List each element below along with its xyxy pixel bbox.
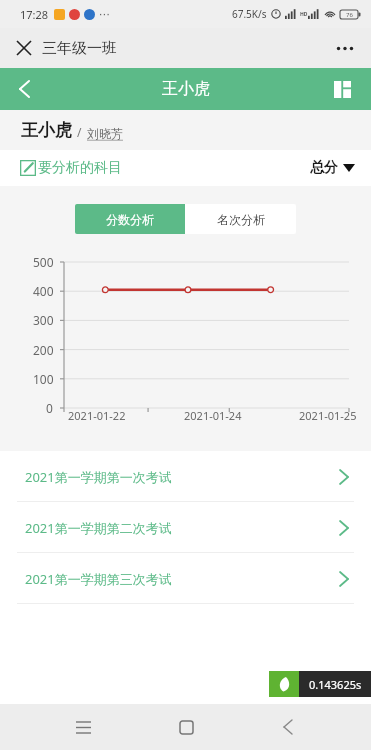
staticText: / bbox=[77, 124, 82, 140]
button[interactable]: Recent apps bbox=[63, 707, 103, 747]
button[interactable]: 2021第一学期第一次考试 bbox=[0, 451, 371, 502]
button[interactable]: 刘晓芳 bbox=[87, 126, 123, 141]
staticText: 200 bbox=[33, 342, 54, 358]
button[interactable]: 2021第一学期第三次考试 bbox=[0, 553, 371, 604]
staticText: 17:28 bbox=[20, 7, 49, 22]
staticText: 总分 bbox=[310, 159, 338, 177]
button[interactable]: Dashboard bbox=[325, 72, 359, 106]
staticText: 2021第一学期第二次考试 bbox=[25, 519, 172, 537]
staticText: 0.143625s bbox=[309, 677, 362, 692]
staticText: 500 bbox=[33, 254, 54, 270]
button[interactable]: 名次分析 bbox=[185, 204, 296, 234]
button[interactable]: Back bbox=[268, 707, 308, 747]
staticText: 王小虎 bbox=[21, 120, 72, 141]
staticText: 100 bbox=[33, 371, 54, 387]
staticText: 名次分析 bbox=[217, 212, 265, 227]
staticText: 三年级一班 bbox=[42, 39, 117, 58]
staticText: HD bbox=[300, 11, 308, 18]
button[interactable]: Render time badge bbox=[269, 671, 371, 697]
staticText: 2021第一学期第三次考试 bbox=[25, 570, 172, 588]
staticText: 刘晓芳 bbox=[87, 126, 123, 141]
staticText: 2021-01-24 bbox=[184, 408, 242, 423]
button[interactable]: 2021第一学期第二次考试 bbox=[0, 502, 371, 553]
staticText: 2021-01-22 bbox=[68, 408, 126, 423]
staticText: 0 bbox=[46, 400, 53, 416]
staticText: 67.5K/s bbox=[232, 7, 267, 21]
button[interactable]: Back bbox=[6, 71, 42, 107]
staticText: 400 bbox=[33, 283, 54, 299]
staticText: 300 bbox=[33, 312, 54, 328]
staticText: 76 bbox=[346, 11, 353, 19]
staticText: 王小虎 bbox=[162, 79, 210, 99]
staticText: 分数分析 bbox=[106, 212, 154, 227]
button[interactable]: Home bbox=[166, 707, 206, 747]
staticText: 2021-01-25 bbox=[299, 408, 357, 423]
button[interactable]: 分数分析 bbox=[75, 204, 185, 234]
staticText: 要分析的科目 bbox=[38, 159, 122, 177]
button[interactable]: 要分析的科目 bbox=[20, 159, 122, 177]
button[interactable]: More options bbox=[329, 32, 361, 64]
button[interactable]: 总分 bbox=[310, 159, 355, 177]
staticText: 2021第一学期第一次考试 bbox=[25, 468, 172, 486]
staticText: ⋯ bbox=[99, 8, 110, 21]
button[interactable]: Close bbox=[8, 32, 40, 64]
